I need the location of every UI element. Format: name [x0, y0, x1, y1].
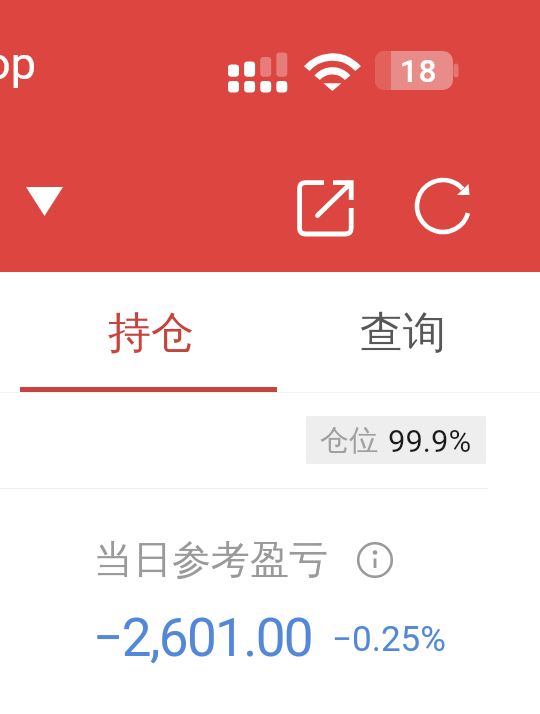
button[interactable]: 持仓: [2, 278, 299, 388]
staticText: 持仓: [108, 306, 194, 360]
button[interactable]: Refresh: [411, 174, 477, 240]
staticText: −2,601.00: [93, 607, 313, 669]
staticText: op: [0, 37, 36, 90]
staticText: −0.25%: [332, 619, 446, 660]
staticText: 仓位: [320, 422, 378, 459]
staticText: 99.9%: [388, 423, 472, 459]
staticText: 当日参考盈亏: [94, 535, 328, 584]
staticText: 查询: [360, 306, 446, 360]
staticText: 18: [400, 53, 438, 89]
button[interactable]: 查询: [299, 278, 506, 388]
button[interactable]: Dropdown: [14, 172, 74, 230]
button[interactable]: Open in new window: [290, 174, 356, 240]
button[interactable]: Info: [355, 540, 395, 580]
button[interactable]: 仓位: [306, 416, 486, 464]
